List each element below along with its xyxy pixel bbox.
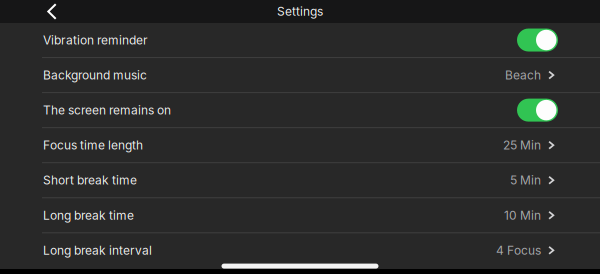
button[interactable]: Vibration reminder <box>0 23 600 57</box>
staticText: Settings <box>277 4 323 19</box>
button[interactable]: Focus time length <box>0 128 600 162</box>
staticText: 5 Min <box>510 173 541 187</box>
staticText: 10 Min <box>504 208 541 222</box>
staticText: Focus time length <box>43 138 143 152</box>
staticText: Vibration reminder <box>43 33 148 47</box>
staticText: 25 Min <box>503 138 541 152</box>
staticText: Background music <box>43 68 147 82</box>
staticText: Long break interval <box>43 243 152 258</box>
staticText: Beach <box>505 68 541 82</box>
button[interactable]: Long break interval <box>0 233 600 267</box>
staticText: Long break time <box>43 208 134 222</box>
button[interactable]: Background music <box>0 58 600 92</box>
button[interactable]: Short break time <box>0 163 600 197</box>
staticText: Short break time <box>43 173 137 187</box>
staticText: The screen remains on <box>43 103 171 117</box>
button[interactable]: The screen remains on <box>0 93 600 127</box>
button[interactable]: Long break time <box>0 198 600 232</box>
staticText: 4 Focus <box>496 243 541 258</box>
button[interactable]: Back <box>37 0 67 23</box>
